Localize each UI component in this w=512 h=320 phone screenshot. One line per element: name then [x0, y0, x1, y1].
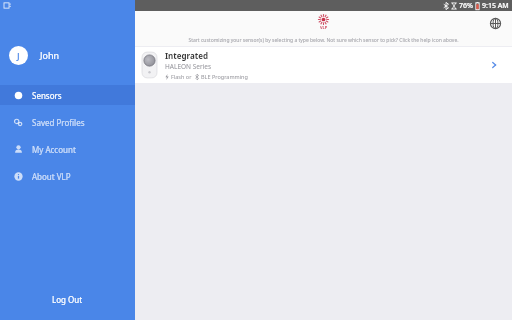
staticText: VLP: [320, 25, 328, 30]
button[interactable]: About VLP: [0, 166, 135, 186]
staticText: My Account: [32, 144, 76, 155]
button[interactable]: My Account: [0, 139, 135, 159]
staticText: 9:15 AM: [482, 1, 509, 11]
staticText: Flash or: [171, 73, 192, 80]
button[interactable]: Sensors: [0, 85, 135, 105]
staticText: 76%: [459, 1, 473, 11]
staticText: About VLP: [32, 171, 71, 182]
staticText: J: [17, 50, 20, 62]
button[interactable]: Integrated: [135, 47, 512, 83]
button[interactable]: Log Out: [0, 286, 135, 312]
button[interactable]: Saved Profiles: [0, 112, 135, 132]
staticText: HALEON Series: [165, 62, 212, 71]
staticText: John: [40, 49, 60, 61]
staticText: Sensors: [32, 90, 62, 101]
button[interactable]: J: [0, 41, 135, 69]
staticText: Integrated: [165, 50, 209, 61]
staticText: Log Out: [52, 294, 83, 305]
button[interactable]: Open Integrated sensor: [484, 55, 504, 75]
staticText: BLE Programming: [201, 73, 248, 80]
staticText: Start customizing your sensor(s) by sele…: [188, 37, 459, 44]
staticText: Saved Profiles: [32, 117, 85, 128]
button[interactable]: Help: [486, 14, 504, 32]
